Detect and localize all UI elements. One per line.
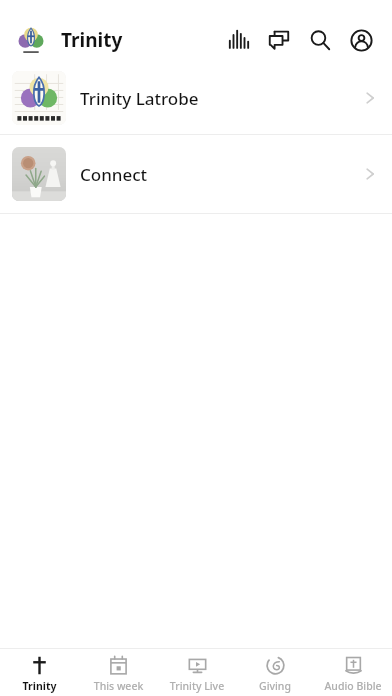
button[interactable]: Messages: [262, 23, 296, 57]
staticText: Trinity: [0, 679, 79, 693]
button[interactable]: Statistics: [222, 23, 256, 57]
staticText: Audio Bible: [314, 679, 392, 693]
button[interactable]: Trinity Latrobe: [0, 62, 392, 134]
button[interactable]: Connect: [0, 135, 392, 213]
button[interactable]: Trinity: [0, 649, 79, 696]
staticText: This week: [79, 679, 158, 693]
staticText: Trinity: [61, 27, 123, 53]
button[interactable]: This week: [79, 649, 158, 696]
staticText: Connect: [80, 163, 355, 186]
button[interactable]: Trinity Live: [158, 649, 236, 696]
staticText: Trinity Live: [158, 679, 236, 693]
staticText: Trinity Latrobe: [80, 87, 355, 110]
button[interactable]: Trinity logo: [15, 24, 47, 56]
staticText: Giving: [236, 679, 314, 693]
button[interactable]: Audio Bible: [314, 649, 392, 696]
button[interactable]: Search: [303, 23, 337, 57]
button[interactable]: Giving: [236, 649, 314, 696]
button[interactable]: Account: [344, 23, 378, 57]
